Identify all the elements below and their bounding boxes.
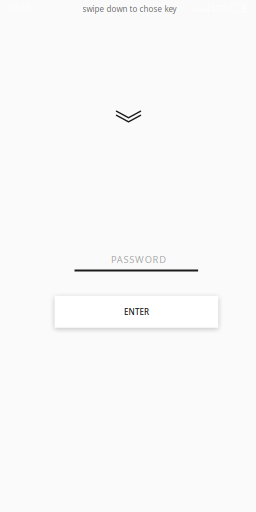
staticText: ENTER xyxy=(124,306,149,317)
staticText: PASSWORD xyxy=(111,253,166,266)
staticText: swipe down to chose key xyxy=(82,4,176,14)
button[interactable]: ENTER xyxy=(55,296,218,328)
